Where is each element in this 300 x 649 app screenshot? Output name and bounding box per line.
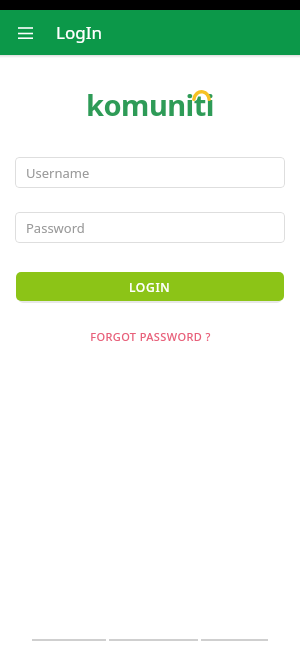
button[interactable]: FORGOT PASSWORD ? <box>82 325 219 348</box>
staticText: FORGOT PASSWORD ? <box>90 329 211 344</box>
button[interactable]: Open navigation menu <box>10 18 40 48</box>
staticText: LOGIN <box>129 279 171 295</box>
button[interactable]: LOGIN <box>16 272 284 301</box>
button[interactable]: Password <box>15 212 285 243</box>
staticText: Username <box>26 164 90 182</box>
staticText: Password <box>26 219 85 237</box>
button[interactable]: Username <box>15 157 285 188</box>
staticText: LogIn <box>56 21 102 44</box>
staticText: komuniti <box>86 85 215 124</box>
